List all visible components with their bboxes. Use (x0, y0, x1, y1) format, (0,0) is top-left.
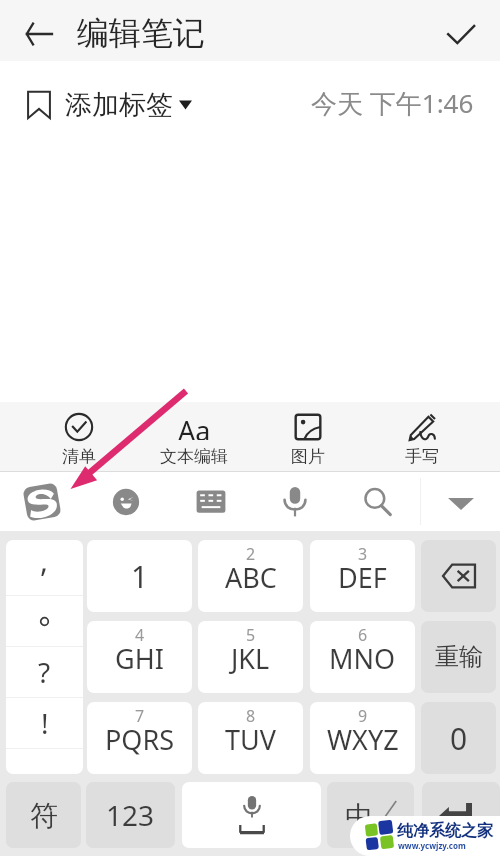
staticText: 3 (358, 543, 368, 565)
button[interactable]: Aa (144, 402, 244, 470)
button[interactable]: , (6, 540, 83, 595)
staticText: 中 (345, 799, 373, 834)
staticText: 添加标签 (65, 88, 173, 122)
button[interactable]: Save note (438, 12, 484, 56)
button[interactable]: 手写 (372, 402, 472, 470)
button[interactable]: 4 (87, 621, 192, 693)
button[interactable]: 清单 (29, 402, 129, 470)
button[interactable]: Chinese full stop (6, 596, 83, 646)
staticText: 清单 (62, 446, 96, 467)
staticText: MNO (329, 640, 396, 677)
staticText: TUV (225, 721, 276, 758)
staticText: 5 (246, 624, 256, 646)
staticText: 7 (135, 705, 145, 727)
staticText: 6 (358, 624, 368, 646)
button[interactable]: 2 (198, 540, 303, 612)
staticText: 123 (106, 796, 155, 834)
staticText: WXYZ (327, 721, 399, 758)
staticText: 0 (450, 718, 468, 759)
button[interactable]: 图片 (258, 402, 358, 470)
staticText: 8 (246, 705, 256, 727)
button[interactable]: Hide keyboard (432, 472, 490, 531)
button[interactable]: 0 (421, 702, 496, 774)
staticText: 手写 (405, 446, 439, 467)
staticText: Aa (178, 412, 211, 440)
button[interactable]: Sogou input method (13, 472, 71, 531)
staticText: 2 (246, 543, 256, 565)
staticText: 4 (135, 624, 145, 646)
staticText: ? (38, 653, 51, 691)
staticText: 符 (30, 798, 58, 833)
button[interactable]: Enter (422, 782, 500, 848)
button[interactable]: 7 (87, 702, 192, 774)
button[interactable]: 5 (198, 621, 303, 693)
staticText: PQRS (105, 721, 175, 758)
staticText: 9 (358, 705, 368, 727)
staticText: 今天 下午1:46 (311, 85, 474, 121)
staticText: 重输 (435, 642, 483, 672)
button[interactable]: 8 (198, 702, 303, 774)
staticText: JKL (231, 640, 270, 677)
staticText: www.ycwjzy.com (398, 840, 466, 851)
button[interactable]: Space (182, 782, 321, 848)
button[interactable]: 123 (86, 782, 175, 848)
staticText: 纯净系统之家 (397, 821, 493, 841)
button[interactable]: Search (348, 472, 406, 531)
staticText: 1 (131, 556, 149, 597)
button[interactable]: Chinese English toggle (327, 782, 414, 848)
button[interactable]: ? (6, 647, 83, 697)
staticText: ! (41, 704, 49, 742)
button[interactable]: 添加标签 (26, 80, 192, 130)
button[interactable]: 重输 (421, 621, 496, 693)
button[interactable]: Keyboard layout (182, 472, 240, 531)
button[interactable]: Back (15, 12, 63, 56)
button[interactable]: Voice input (266, 472, 324, 531)
button[interactable]: 6 (310, 621, 415, 693)
staticText: 文本编辑 (160, 446, 228, 467)
staticText: ABC (225, 559, 277, 596)
staticText: GHI (115, 640, 164, 677)
staticText: DEF (338, 559, 387, 596)
button[interactable]: Backspace (421, 540, 496, 612)
button[interactable]: 9 (310, 702, 415, 774)
staticText: 编辑笔记 (77, 13, 205, 53)
staticText: , (40, 540, 49, 581)
button[interactable]: ! (6, 698, 83, 748)
button[interactable]: 符 (6, 782, 81, 848)
button[interactable]: Emoji (97, 472, 155, 531)
staticText: 图片 (291, 446, 325, 467)
button[interactable]: 1 (87, 540, 192, 612)
button[interactable]: 3 (310, 540, 415, 612)
